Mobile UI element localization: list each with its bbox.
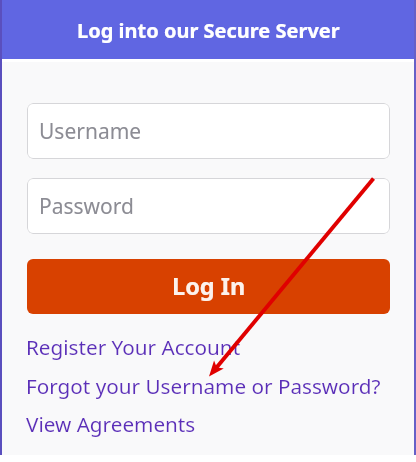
button[interactable]: Log into our Secure Server: [0, 0, 416, 59]
button[interactable]: Password: [27, 178, 390, 234]
button[interactable]: Register Your Account: [26, 332, 241, 362]
staticText: Forgot your Username or Password?: [26, 372, 381, 400]
staticText: Log In: [172, 270, 246, 302]
button[interactable]: View Agreements: [26, 409, 196, 439]
button[interactable]: Forgot your Username or Password?: [26, 371, 381, 401]
staticText: Username: [39, 117, 142, 146]
staticText: View Agreements: [26, 410, 196, 438]
button[interactable]: Username: [27, 103, 390, 159]
staticText: Log into our Secure Server: [77, 17, 340, 44]
staticText: Password: [39, 192, 134, 221]
button[interactable]: Log In: [27, 259, 390, 314]
staticText: Register Your Account: [26, 333, 241, 361]
